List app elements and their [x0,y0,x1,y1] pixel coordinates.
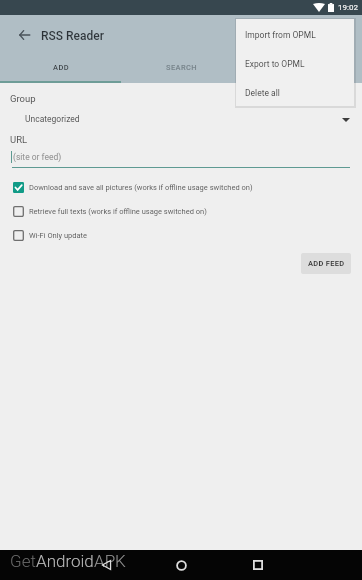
button[interactable]: Import from OPML [236,21,354,49]
staticText: Download and save all pictures (works if… [29,183,253,192]
staticText: Get [10,551,36,571]
staticText: URL [10,134,28,145]
staticText: Android [36,551,94,571]
button[interactable]: Delete all [236,79,354,107]
button[interactable]: Back [83,550,129,580]
button[interactable]: SEARCH [121,53,242,81]
button[interactable]: Home [158,550,204,580]
staticText: (site or feed) [13,152,62,162]
staticText: ADD FEED [308,259,345,268]
button[interactable]: Wi-Fi Only update [0,229,362,241]
button[interactable]: ADD FEED [301,253,351,274]
button[interactable]: Retrieve full texts (works if offline us… [0,205,362,217]
staticText: RSS Reader [41,29,104,43]
staticText: Retrieve full texts (works if offline us… [29,207,207,216]
button[interactable]: Navigate up [13,23,36,46]
staticText: Delete all [245,88,280,98]
staticText: Wi-Fi Only update [29,231,88,240]
staticText: Uncategorized [25,114,80,124]
button[interactable]: Recent apps [235,550,281,580]
staticText: SEARCH [166,63,198,72]
staticText: APK [94,551,126,571]
button[interactable]: ADD [0,53,121,81]
button[interactable]: Uncategorized [0,109,362,128]
staticText: Group [10,93,36,104]
button[interactable]: Export to OPML [236,50,354,78]
staticText: Export to OPML [245,59,305,69]
button[interactable]: Download and save all pictures (works if… [0,181,362,193]
staticText: Import from OPML [245,30,316,40]
staticText: 19:02 [338,3,358,12]
staticText: ADD [53,63,69,72]
